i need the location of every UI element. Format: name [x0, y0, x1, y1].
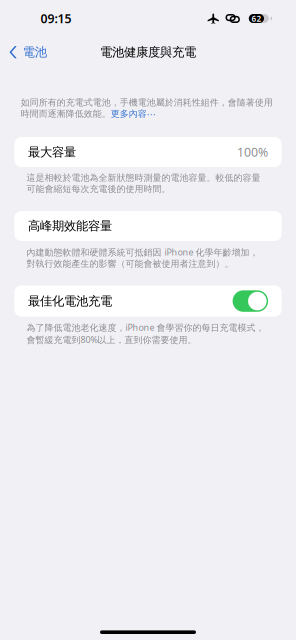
button[interactable]: 電池: [0, 37, 55, 67]
staticText: 最大容量: [28, 144, 76, 160]
staticText: 62: [251, 13, 261, 24]
staticText: 電池健康度與充電: [100, 44, 196, 60]
staticText: 如同所有的充電式電池，手機電池屬於消耗性組件，會隨著使用時間而逐漸降低效能。更多…: [21, 97, 273, 119]
staticText: 為了降低電池老化速度，iPhone 會學習你的每日充電模式，會暫緩充電到80%以…: [26, 321, 264, 346]
staticText: 電池: [23, 44, 47, 60]
staticText: 100%: [237, 144, 268, 160]
staticText: 09:15: [40, 10, 71, 27]
staticText: 這是相較於電池為全新狀態時測量的電池容量。較低的容量可能會縮短每次充電後的使用時…: [26, 172, 260, 195]
button[interactable]: 最大容量: [0, 137, 296, 167]
button[interactable]: 最佳化電池充電: [0, 286, 296, 317]
staticText: 最佳化電池充電: [28, 293, 112, 309]
staticText: 內建動態軟體和硬體系統可抵銷因 iPhone 化學年齡增加，對執行效能產生的影響…: [26, 246, 258, 269]
staticText: 高峰期效能容量: [28, 218, 112, 234]
button[interactable]: 高峰期效能容量: [0, 211, 296, 241]
